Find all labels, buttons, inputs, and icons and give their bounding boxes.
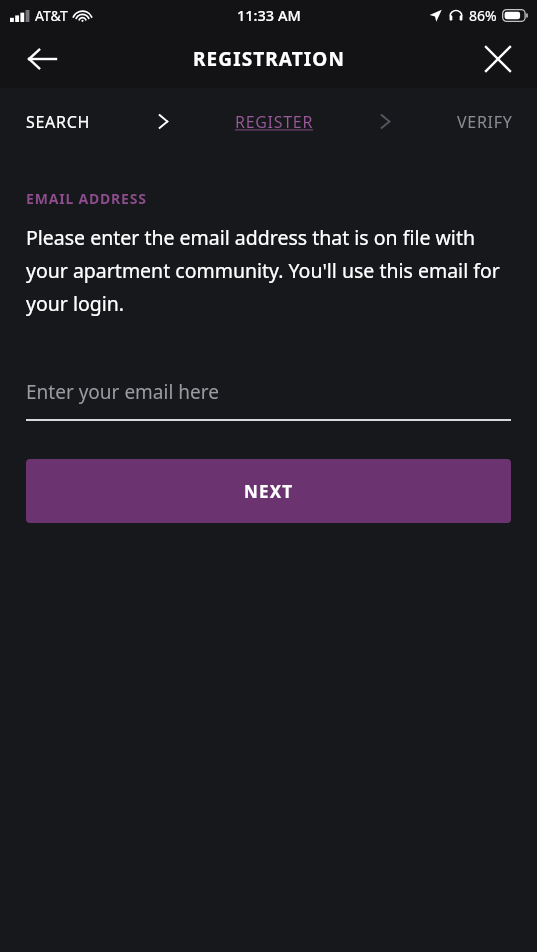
button[interactable]: Close bbox=[471, 32, 525, 86]
button[interactable]: SEARCH bbox=[26, 111, 91, 133]
button[interactable]: Enter your email here bbox=[26, 379, 511, 421]
button[interactable]: VERIFY bbox=[457, 111, 513, 133]
staticText: NEXT bbox=[244, 480, 294, 503]
staticText: REGISTER bbox=[235, 111, 314, 133]
staticText: REGISTRATION bbox=[193, 46, 345, 72]
staticText: 11:33 AM bbox=[237, 5, 301, 25]
staticText: AT&T bbox=[35, 6, 68, 25]
staticText: 86% bbox=[469, 6, 497, 25]
button[interactable]: Back bbox=[14, 31, 70, 87]
button[interactable]: NEXT bbox=[26, 459, 511, 523]
button[interactable]: REGISTER bbox=[235, 111, 314, 133]
staticText: Please enter the email address that is o… bbox=[26, 224, 513, 317]
staticText: Enter your email here bbox=[26, 379, 219, 405]
staticText: EMAIL ADDRESS bbox=[26, 189, 147, 208]
